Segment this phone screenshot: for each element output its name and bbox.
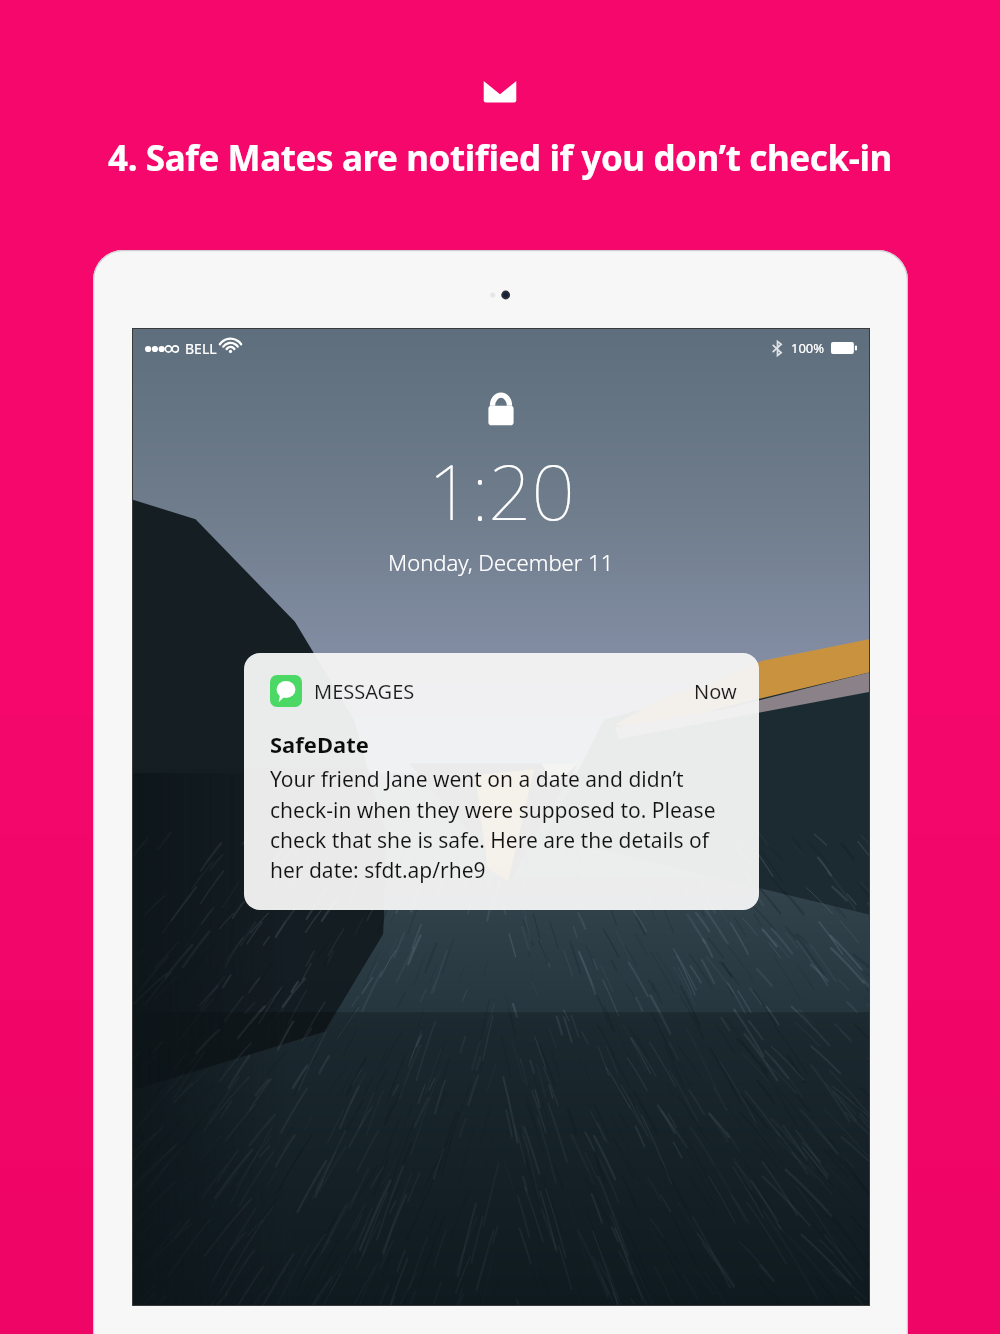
staticText: Monday, December 11: [388, 547, 614, 577]
staticText: 1:20: [428, 439, 575, 543]
staticText: BELL: [185, 339, 217, 358]
staticText: 100%: [791, 339, 825, 357]
button[interactable]: MESSAGES: [244, 653, 759, 910]
staticText: MESSAGES: [314, 678, 415, 705]
staticText: SafeDate: [270, 729, 369, 759]
staticText: Your friend Jane went on a date and didn…: [270, 765, 737, 884]
staticText: 4. Safe Mates are notified if you don’t …: [108, 134, 892, 182]
button[interactable]: Email notification: [478, 74, 522, 108]
staticText: Now: [694, 678, 737, 705]
